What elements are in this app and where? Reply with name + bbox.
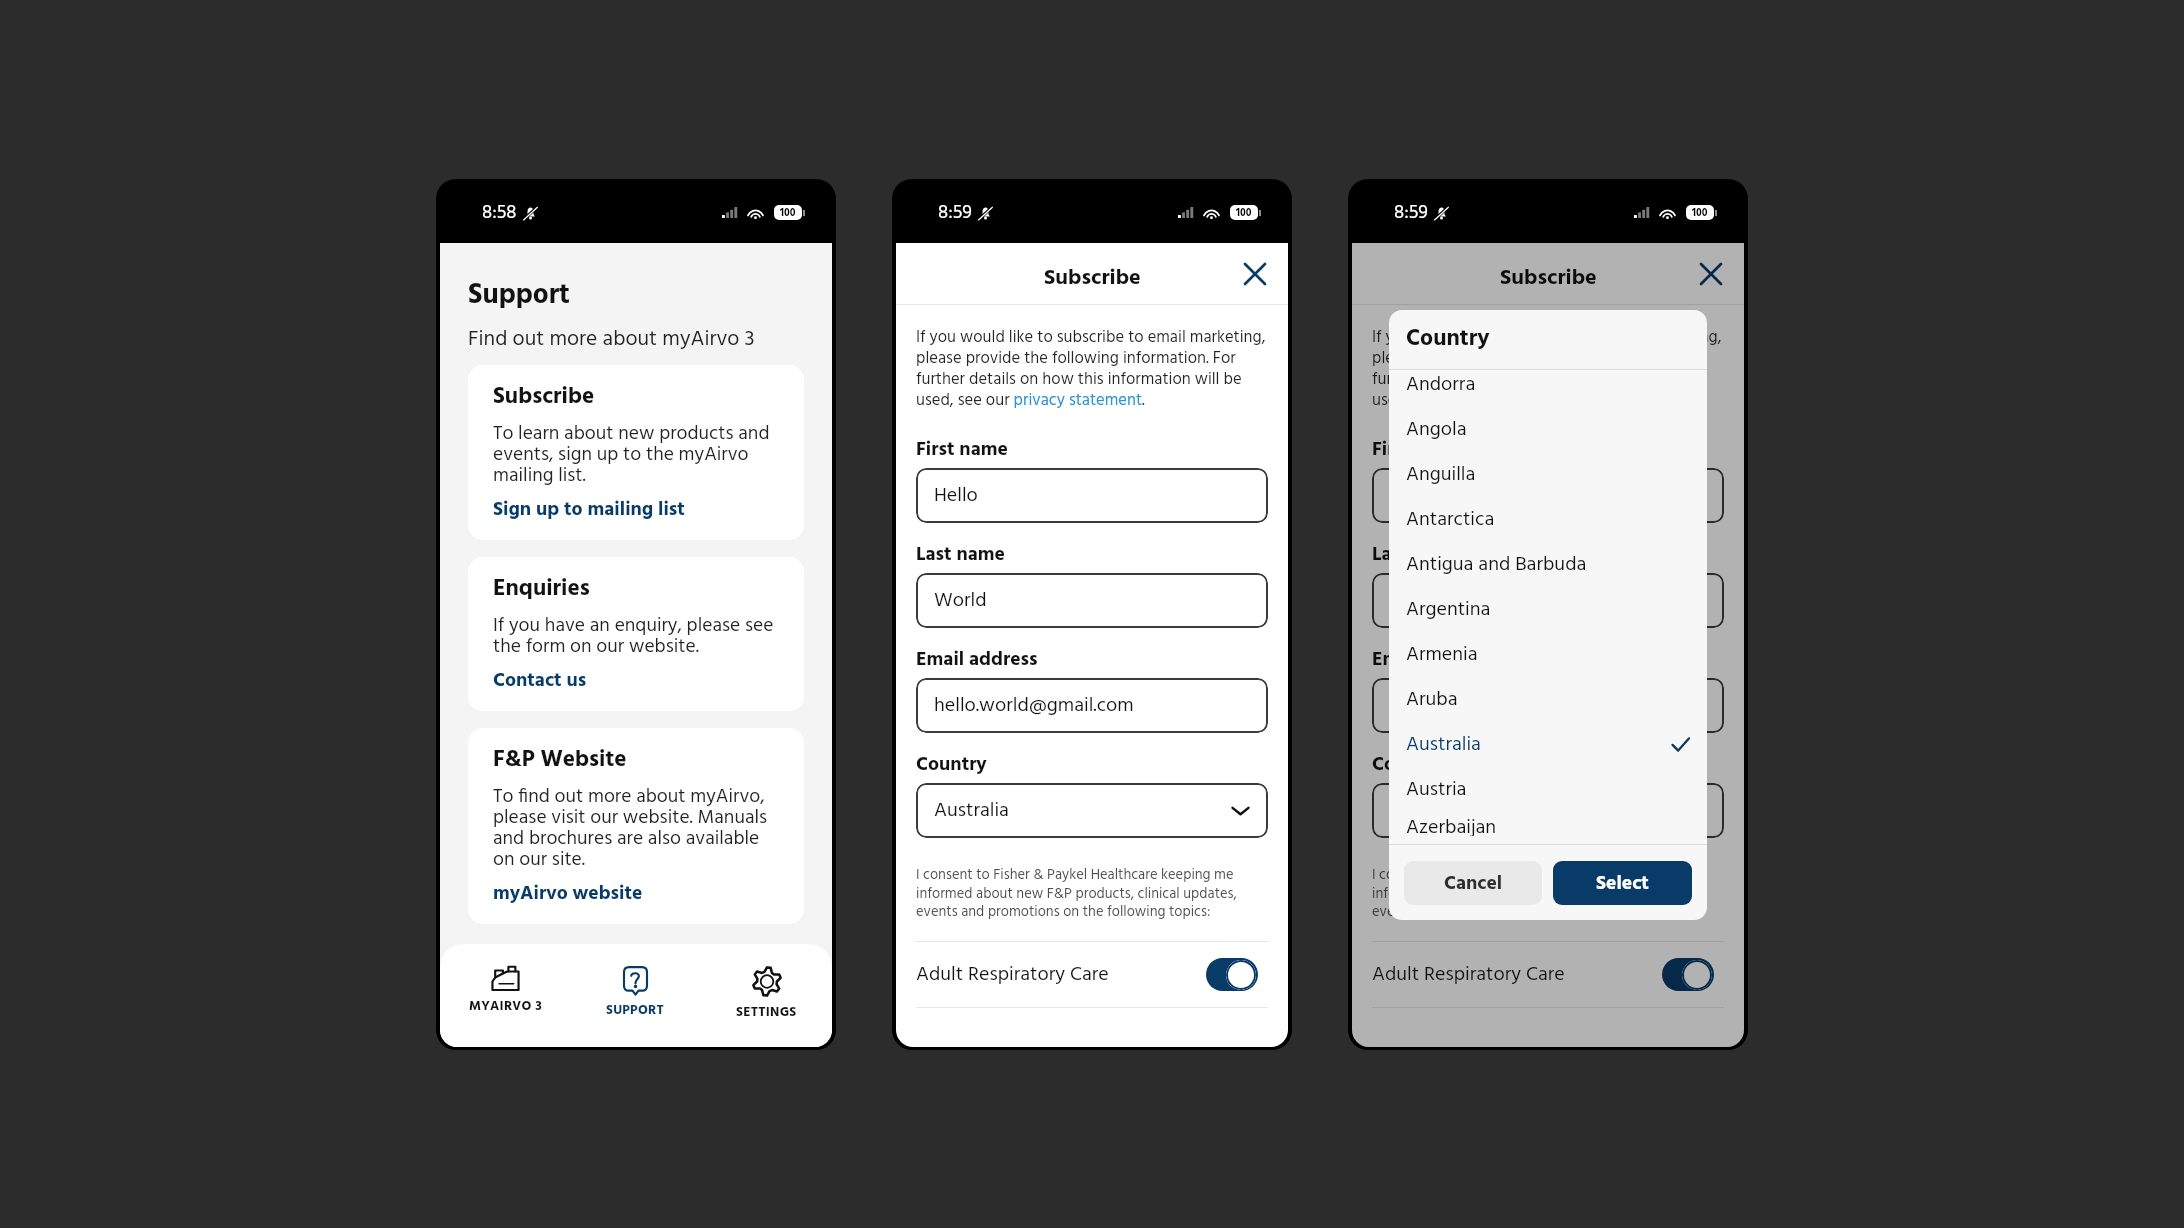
staticText: Australia bbox=[1406, 729, 1671, 761]
staticText: World bbox=[1390, 585, 1443, 617]
staticText: myAirvo website bbox=[493, 878, 643, 909]
button[interactable]: Adult Respiratory Care bbox=[916, 942, 1268, 1007]
button[interactable]: Argentina bbox=[1389, 595, 1707, 640]
staticText: To find out more about myAirvo, please v… bbox=[493, 781, 785, 876]
staticText: Austria bbox=[1406, 774, 1690, 806]
button[interactable]: SUPPORT bbox=[598, 964, 673, 1023]
button[interactable]: Subscribe bbox=[468, 365, 804, 540]
button[interactable]: Select bbox=[1553, 861, 1692, 905]
staticText: Find out more about myAirvo 3 bbox=[468, 322, 755, 356]
button[interactable]: Hello bbox=[1372, 468, 1724, 523]
staticText: Last name bbox=[1372, 539, 1461, 570]
button[interactable]: World bbox=[1372, 573, 1724, 628]
staticText: Country bbox=[1406, 321, 1490, 358]
staticText: Subscribe bbox=[1044, 261, 1141, 296]
staticText: If you have an enquiry, please see the f… bbox=[493, 610, 785, 663]
button[interactable]: Anguilla bbox=[1389, 460, 1707, 505]
staticText: 8:59 bbox=[1394, 198, 1428, 228]
staticText: 100 bbox=[1692, 205, 1708, 220]
staticText: World bbox=[934, 585, 987, 617]
staticText: Antarctica bbox=[1406, 504, 1690, 536]
button[interactable]: Antarctica bbox=[1389, 505, 1707, 550]
button[interactable]: Andorra bbox=[1389, 370, 1707, 415]
button[interactable]: Hello bbox=[916, 468, 1268, 523]
staticText: First name bbox=[1372, 434, 1464, 465]
staticText: Last name bbox=[916, 539, 1005, 570]
staticText: Andorra bbox=[1406, 370, 1690, 401]
staticText: Email address bbox=[1372, 644, 1494, 675]
staticText: Anguilla bbox=[1406, 459, 1690, 491]
staticText: Sign up to mailing list bbox=[493, 494, 685, 525]
button[interactable]: Close bbox=[1238, 257, 1272, 291]
button[interactable]: SETTINGS bbox=[728, 964, 805, 1025]
staticText: Hello bbox=[934, 480, 978, 512]
button[interactable]: World bbox=[916, 573, 1268, 628]
staticText: hello.world@gmail.com bbox=[934, 690, 1134, 722]
staticText: Angola bbox=[1406, 414, 1690, 446]
button[interactable]: Antigua and Barbuda bbox=[1389, 550, 1707, 595]
button[interactable]: Australia bbox=[1389, 730, 1707, 775]
staticText: SETTINGS bbox=[736, 1002, 797, 1023]
staticText: Country bbox=[916, 749, 987, 780]
staticText: If you would like to subscribe to email … bbox=[1372, 324, 1724, 414]
staticText: 100 bbox=[780, 205, 796, 220]
staticText: Support bbox=[468, 273, 570, 318]
button[interactable]: Azerbaijan bbox=[1389, 820, 1707, 844]
staticText: 8:59 bbox=[938, 198, 972, 228]
button[interactable]: Austria bbox=[1389, 775, 1707, 820]
staticText: Contact us bbox=[493, 665, 587, 696]
staticText: Cancel bbox=[1444, 868, 1503, 899]
staticText: hello.world@gmail.com bbox=[1390, 690, 1590, 722]
button[interactable]: Close bbox=[1694, 257, 1728, 291]
button[interactable]: Adult Respiratory Care bbox=[1372, 942, 1724, 1007]
staticText: I consent to Fisher & Paykel Healthcare … bbox=[916, 864, 1268, 924]
button[interactable]: Australia bbox=[916, 783, 1268, 838]
button[interactable]: hello.world@gmail.com bbox=[916, 678, 1268, 733]
button[interactable]: Armenia bbox=[1389, 640, 1707, 685]
staticText: Email address bbox=[916, 644, 1038, 675]
staticText: To learn about new products and events, … bbox=[493, 418, 785, 492]
staticText: Aruba bbox=[1406, 684, 1690, 716]
staticText: 8:58 bbox=[482, 198, 517, 228]
staticText: Antigua and Barbuda bbox=[1406, 549, 1690, 581]
staticText: Armenia bbox=[1406, 639, 1690, 671]
staticText: Country bbox=[1372, 749, 1443, 780]
button[interactable]: Enquiries bbox=[468, 557, 804, 711]
staticText: Argentina bbox=[1406, 594, 1690, 626]
staticText: F&P Website bbox=[493, 742, 627, 779]
button[interactable]: Australia bbox=[1372, 783, 1724, 838]
staticText: Subscribe bbox=[493, 379, 595, 416]
staticText: If you would like to subscribe to email … bbox=[916, 324, 1268, 414]
staticText: Adult Respiratory Care bbox=[1372, 959, 1662, 991]
staticText: Subscribe bbox=[1500, 261, 1597, 296]
staticText: Australia bbox=[1390, 795, 1465, 827]
button[interactable]: F&P Website bbox=[468, 728, 804, 924]
staticText: SUPPORT bbox=[606, 1000, 665, 1021]
staticText: MYAIRVO 3 bbox=[469, 996, 542, 1017]
staticText: Adult Respiratory Care bbox=[916, 959, 1206, 991]
staticText: Azerbaijan bbox=[1406, 812, 1690, 836]
staticText: Enquiries bbox=[493, 571, 590, 608]
staticText: 100 bbox=[1236, 205, 1252, 220]
staticText: First name bbox=[916, 434, 1008, 465]
button[interactable]: Angola bbox=[1389, 415, 1707, 460]
staticText: Australia bbox=[934, 795, 1009, 827]
button[interactable]: MYAIRVO 3 bbox=[461, 964, 550, 1019]
staticText: Hello bbox=[1390, 480, 1434, 512]
staticText: I consent to Fisher & Paykel Healthcare … bbox=[1372, 864, 1724, 924]
staticText: Select bbox=[1596, 868, 1649, 899]
button[interactable]: Aruba bbox=[1389, 685, 1707, 730]
button[interactable]: hello.world@gmail.com bbox=[1372, 678, 1724, 733]
button[interactable]: Cancel bbox=[1404, 861, 1542, 905]
